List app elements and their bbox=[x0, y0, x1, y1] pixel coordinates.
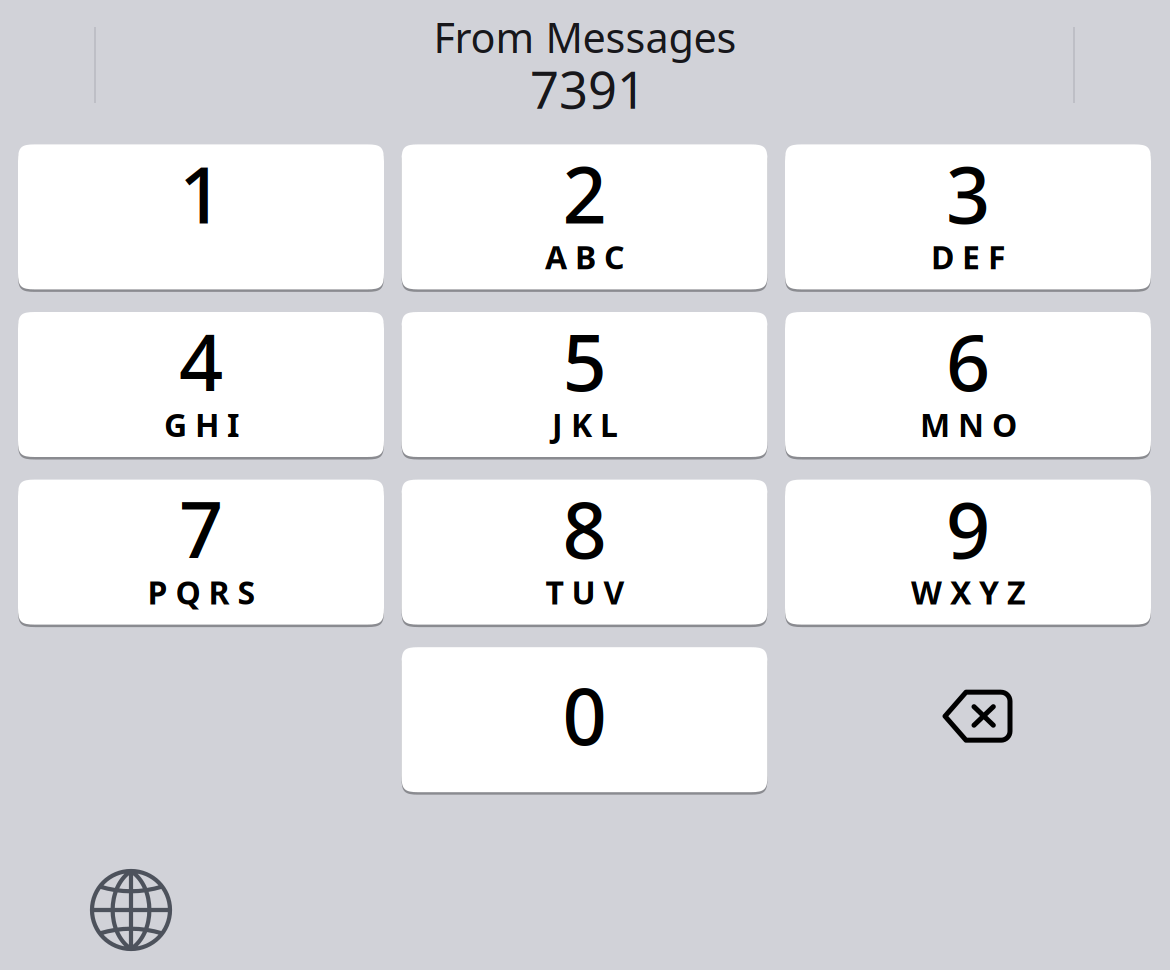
staticText: 5 bbox=[562, 310, 606, 412]
button[interactable]: 6 bbox=[785, 309, 1151, 460]
staticText: JKL bbox=[552, 403, 618, 446]
staticText: 6 bbox=[946, 310, 990, 412]
staticText: 2 bbox=[562, 142, 606, 245]
staticText: From Messages bbox=[433, 10, 736, 64]
staticText: 1 bbox=[179, 142, 223, 245]
button[interactable]: Next keyboard bbox=[31, 835, 231, 970]
staticText: ABC bbox=[545, 236, 625, 278]
staticText: MNO bbox=[920, 403, 1017, 446]
button[interactable]: From Messages bbox=[105, 1, 1065, 129]
button[interactable]: 3 bbox=[785, 141, 1151, 292]
staticText: 9 bbox=[946, 477, 990, 580]
button[interactable]: 9 bbox=[785, 477, 1151, 628]
staticText: PQRS bbox=[147, 571, 255, 613]
staticText: DEF bbox=[931, 236, 1006, 278]
button[interactable]: 7 bbox=[18, 477, 384, 628]
button[interactable]: 1 bbox=[18, 141, 384, 292]
staticText: 7391 bbox=[530, 55, 646, 123]
staticText: 0 bbox=[562, 664, 606, 766]
staticText: 7 bbox=[179, 477, 223, 580]
staticText: TUV bbox=[545, 571, 624, 613]
button[interactable]: 8 bbox=[401, 477, 767, 628]
button[interactable]: 5 bbox=[401, 309, 767, 460]
staticText: 4 bbox=[179, 310, 223, 412]
staticText: GHI bbox=[164, 403, 239, 446]
button[interactable]: 0 bbox=[401, 644, 767, 795]
staticText: 3 bbox=[946, 142, 990, 245]
button[interactable]: 4 bbox=[18, 309, 384, 460]
staticText: 8 bbox=[562, 477, 606, 580]
staticText: WXYZ bbox=[911, 571, 1026, 613]
button[interactable]: Delete bbox=[785, 647, 1151, 792]
button[interactable]: 2 bbox=[401, 141, 767, 292]
